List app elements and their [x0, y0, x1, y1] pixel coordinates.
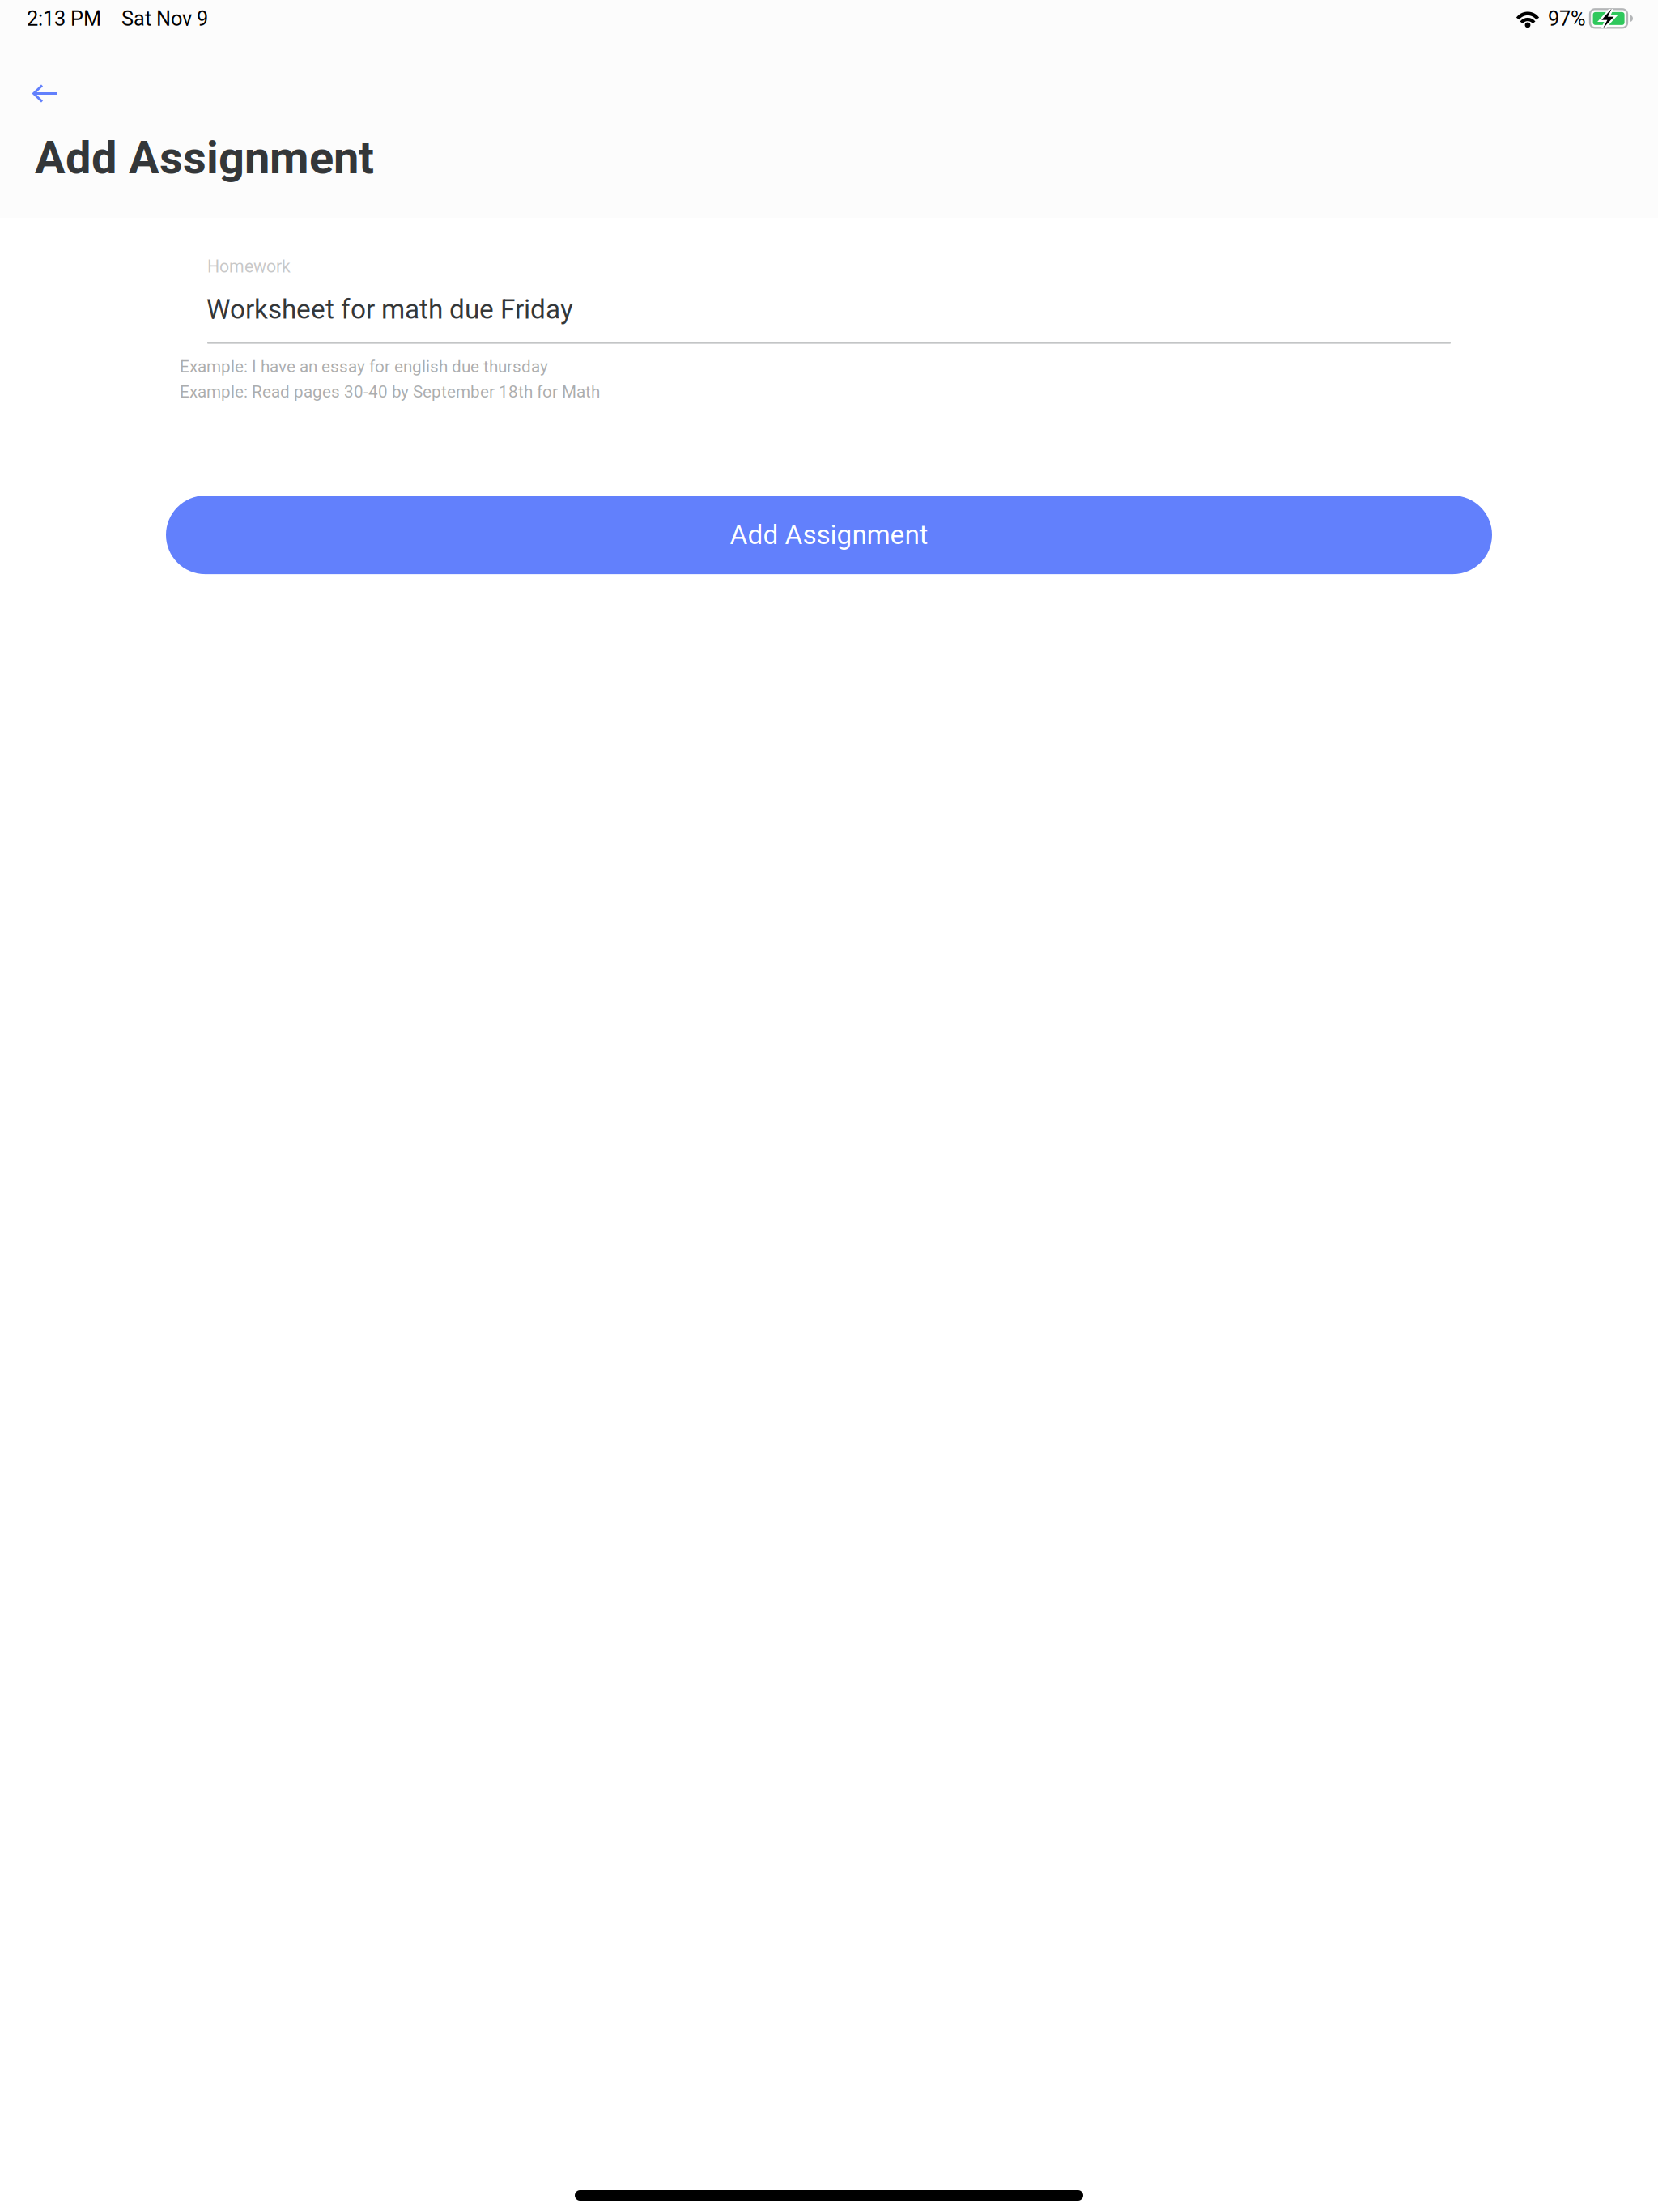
staticText: Example: Read pages 30-40 by September 1… — [180, 382, 600, 402]
staticText: Worksheet for math due Friday — [206, 294, 573, 325]
staticText: Sat Nov 9 — [121, 7, 208, 31]
staticText: Add Assignment — [730, 519, 928, 551]
staticText: 2:13 PM — [27, 7, 101, 31]
staticText: 97% — [1548, 7, 1586, 31]
staticText: Add Assignment — [35, 131, 374, 184]
staticText: Example: I have an essay for english due… — [180, 357, 548, 376]
staticText: Homework — [207, 256, 291, 277]
button[interactable]: Back — [0, 50, 78, 111]
button[interactable]: Homework — [0, 256, 1658, 344]
button[interactable]: Add Assignment — [166, 496, 1492, 574]
